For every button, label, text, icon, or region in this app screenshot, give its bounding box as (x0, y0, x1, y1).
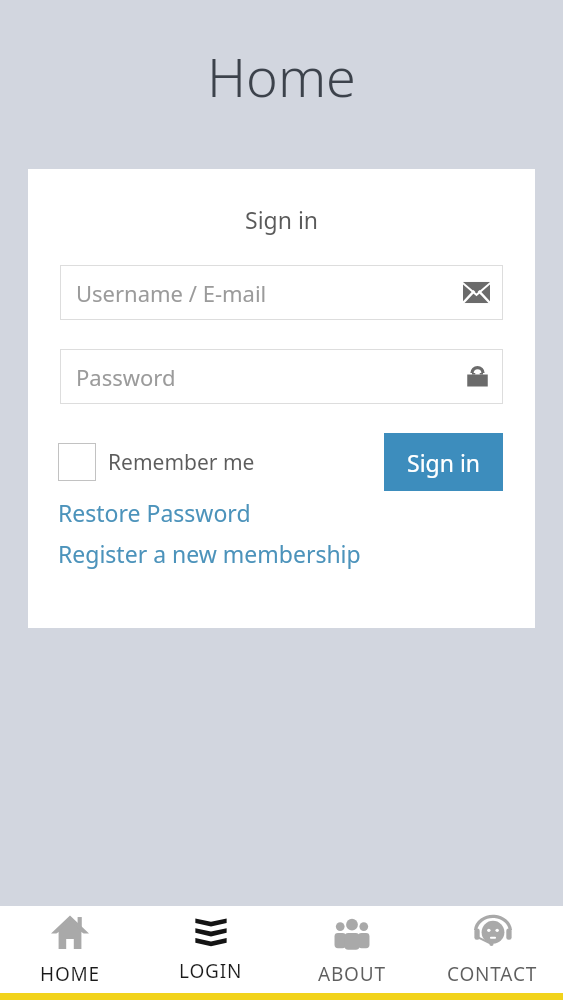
button[interactable]: LOGIN (140, 907, 281, 992)
staticText: Restore Password (58, 497, 251, 528)
staticText: Username / E-mail (76, 278, 267, 308)
staticText: LOGIN (179, 958, 243, 984)
staticText: Remember me (108, 448, 255, 477)
button[interactable]: CONTACT (422, 906, 563, 993)
staticText: HOME (40, 961, 100, 985)
staticText: Sign in (245, 204, 319, 235)
staticText: ABOUT (318, 961, 386, 985)
button[interactable]: Remember me (58, 435, 255, 489)
staticText: CONTACT (447, 961, 538, 985)
button[interactable]: HOME (0, 906, 140, 993)
button[interactable]: Password (60, 349, 503, 404)
button[interactable]: ABOUT (281, 906, 422, 993)
staticText: Sign in (407, 447, 481, 478)
button[interactable]: Restore Password (58, 497, 251, 528)
button[interactable]: Sign in (384, 433, 503, 491)
staticText: Password (76, 362, 176, 392)
staticText: Register a new membership (58, 538, 361, 569)
button[interactable]: Register a new membership (58, 538, 361, 569)
staticText: Home (207, 39, 356, 113)
button[interactable]: Username / E-mail (60, 265, 503, 320)
